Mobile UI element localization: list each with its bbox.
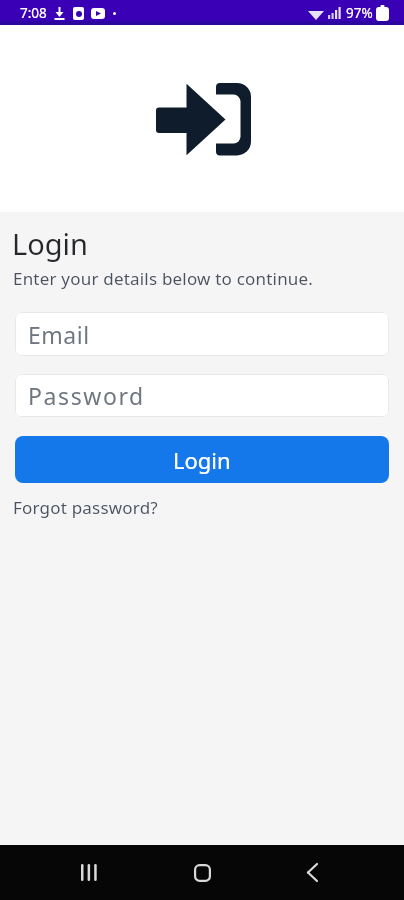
button[interactable]: Email [15, 312, 389, 356]
button[interactable] [280, 845, 344, 900]
staticText: Password [28, 380, 145, 411]
button[interactable] [170, 845, 234, 900]
staticText: Email [28, 319, 90, 350]
staticText: Login [173, 445, 231, 475]
button[interactable] [57, 845, 121, 900]
staticText: 7:08 [20, 4, 47, 22]
staticText: Login [12, 224, 88, 263]
staticText: 97% [346, 4, 373, 22]
button[interactable]: Forgot password? [13, 496, 158, 519]
button[interactable]: Password [15, 374, 389, 417]
button[interactable]: Login [15, 436, 389, 483]
staticText: Enter your details below to continue. [13, 267, 314, 290]
